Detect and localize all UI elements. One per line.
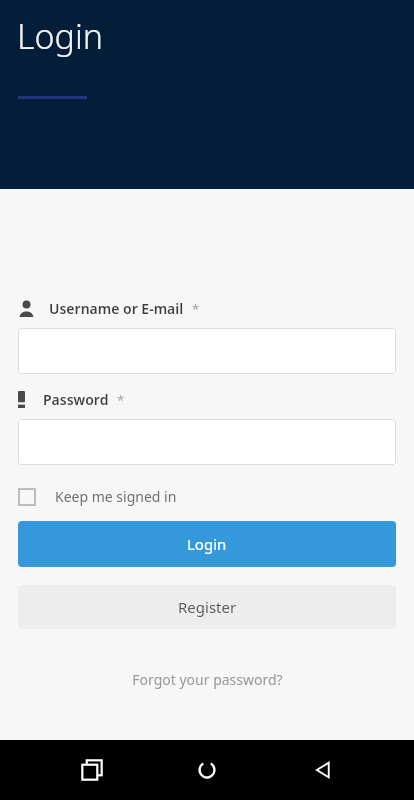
- staticText: Register: [178, 597, 237, 617]
- button[interactable]: Recent apps: [68, 746, 116, 794]
- button[interactable]: Forgot your password?: [124, 666, 291, 693]
- button[interactable]: [18, 328, 396, 374]
- staticText: *: [117, 391, 125, 409]
- staticText: Password: [43, 390, 109, 409]
- staticText: Username or E-mail: [49, 299, 184, 318]
- button[interactable]: Login: [18, 521, 396, 567]
- button[interactable]: [18, 419, 396, 465]
- staticText: Login: [187, 534, 227, 554]
- button[interactable]: Keep me signed in: [18, 487, 177, 506]
- button[interactable]: Register: [18, 585, 396, 629]
- staticText: Login: [17, 13, 104, 59]
- staticText: Keep me signed in: [55, 487, 177, 506]
- staticText: *: [192, 300, 200, 318]
- button[interactable]: Back: [299, 746, 347, 794]
- button[interactable]: Home: [183, 746, 231, 794]
